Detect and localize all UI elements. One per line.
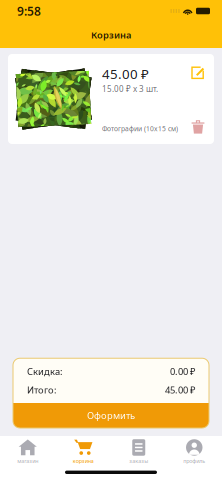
staticText: Скидка: <box>27 365 63 378</box>
staticText: Оформить <box>87 409 135 422</box>
button[interactable]: магазин <box>0 436 55 467</box>
staticText: 15.00 ₽ x 3 шт. <box>102 84 158 94</box>
staticText: Итого: <box>27 384 57 396</box>
button[interactable]: профиль <box>166 436 222 467</box>
button[interactable]: корзина <box>55 436 111 467</box>
staticText: профиль <box>183 457 205 465</box>
staticText: 0.00 ₽ <box>170 365 195 378</box>
button[interactable]: заказы <box>111 436 166 467</box>
button[interactable]: Оформить <box>13 403 209 428</box>
staticText: заказы <box>129 457 148 465</box>
staticText: магазин <box>17 457 38 465</box>
staticText: Фотографии (10x15 см) <box>102 124 178 133</box>
staticText: Корзина <box>91 29 131 41</box>
staticText: 9:58 <box>17 3 41 19</box>
staticText: 45.00 ₽ <box>165 384 195 396</box>
button[interactable]: Изменить товар <box>191 65 205 80</box>
staticText: 45.00 ₽ <box>102 65 149 83</box>
staticText: корзина <box>73 457 94 465</box>
button[interactable]: Удалить товар <box>191 119 205 135</box>
